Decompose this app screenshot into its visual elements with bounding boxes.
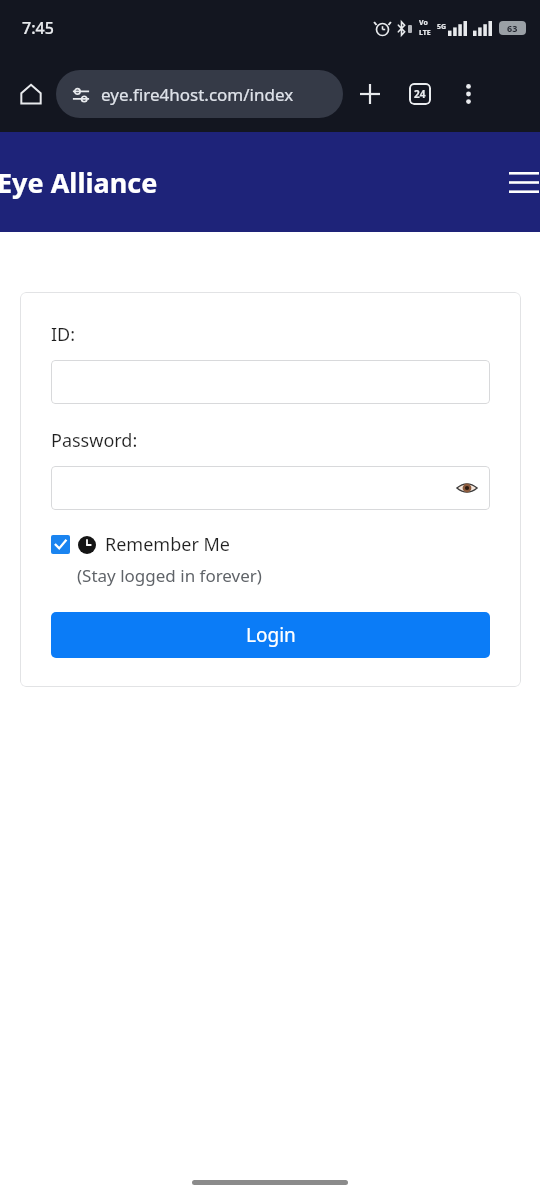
staticText: Vo (419, 18, 428, 28)
button[interactable]: More options (449, 75, 487, 113)
staticText: 7:45 (22, 17, 54, 39)
button[interactable]: Show password (51, 466, 490, 510)
staticText: Password: (51, 428, 138, 453)
staticText: 24 (414, 87, 426, 101)
staticText: eye.fire4host.com/index (101, 83, 294, 106)
button[interactable] (51, 360, 490, 404)
button[interactable]: Show password (455, 476, 479, 500)
button[interactable]: Menu (502, 160, 540, 204)
button[interactable]: eye.fire4host.com/index (56, 70, 343, 118)
button[interactable]: Tabs, 24 open (401, 75, 439, 113)
button[interactable]: Remember Me (51, 532, 230, 557)
staticText: Login (246, 622, 296, 648)
staticText: 5G (437, 22, 447, 32)
staticText: LTE (419, 28, 431, 38)
staticText: Eye Alliance (0, 164, 158, 201)
staticText: (Stay logged in forever) (77, 564, 262, 587)
button[interactable]: Login (51, 612, 490, 658)
staticText: ID: (51, 322, 76, 347)
button[interactable]: New tab (351, 75, 389, 113)
staticText: 63 (507, 22, 518, 34)
staticText: Remember Me (105, 532, 230, 557)
button[interactable]: Home (14, 77, 48, 111)
